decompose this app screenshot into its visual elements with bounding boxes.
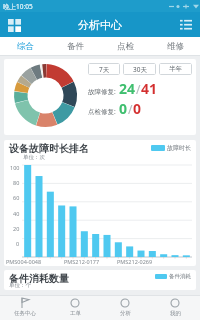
staticText: 60 xyxy=(13,194,20,201)
staticText: 点检修复: xyxy=(88,107,116,116)
staticText: 综合 xyxy=(17,41,34,52)
staticText: 备件消耗 xyxy=(169,273,191,280)
staticText: 备件 xyxy=(67,41,84,52)
button[interactable]: 综合 xyxy=(0,37,50,56)
staticText: 0 xyxy=(133,99,142,118)
staticText: 7天 xyxy=(99,65,110,74)
staticText: PMS212-0177 xyxy=(64,258,100,265)
staticText: 41 xyxy=(141,79,158,98)
button[interactable]: 我的 xyxy=(150,295,200,320)
staticText: PMS004-0048 xyxy=(6,258,42,265)
staticText: 分析中心 xyxy=(78,18,122,32)
staticText: 80 xyxy=(13,179,20,186)
staticText: 我的 xyxy=(170,310,181,317)
button[interactable]: 半年 xyxy=(159,63,192,75)
button[interactable]: Menu grid xyxy=(5,16,23,34)
staticText: 工单 xyxy=(70,310,81,317)
staticText: 0 xyxy=(119,99,128,118)
staticText: 40 xyxy=(13,210,20,217)
staticText: 半年 xyxy=(169,65,182,73)
staticText: 单位：次 xyxy=(23,154,45,161)
button[interactable]: 分析 xyxy=(100,295,150,320)
staticText: 24 xyxy=(119,79,136,98)
staticText: 单位：个 xyxy=(9,282,31,289)
staticText: 分析 xyxy=(120,310,131,317)
staticText: / xyxy=(128,101,133,117)
staticText: PMS212-0269 xyxy=(117,258,153,265)
staticText: 30天 xyxy=(133,65,147,74)
staticText: 点检 xyxy=(117,41,134,52)
staticText: 0 xyxy=(16,240,20,247)
button[interactable]: 工单 xyxy=(50,295,100,320)
staticText: 20 xyxy=(13,225,20,232)
button[interactable]: 备件 xyxy=(50,37,100,56)
button[interactable]: List options xyxy=(177,16,195,34)
button[interactable]: 任务中心 xyxy=(0,295,50,320)
staticText: 维修 xyxy=(167,41,184,52)
button[interactable]: 维修 xyxy=(150,37,200,56)
button[interactable]: 30天 xyxy=(123,63,156,75)
staticText: / xyxy=(136,81,141,97)
staticText: 备件消耗数量 xyxy=(9,272,69,285)
staticText: 100 xyxy=(10,164,20,171)
staticText: 故障修复: xyxy=(88,87,116,96)
staticText: 故障时长 xyxy=(167,144,191,152)
button[interactable]: 点检 xyxy=(100,37,150,56)
staticText: 晚上10:05 xyxy=(3,2,33,11)
staticText: 设备故障时长排名 xyxy=(9,142,89,155)
staticText: 任务中心 xyxy=(14,310,36,317)
button[interactable]: 7天 xyxy=(88,63,120,75)
